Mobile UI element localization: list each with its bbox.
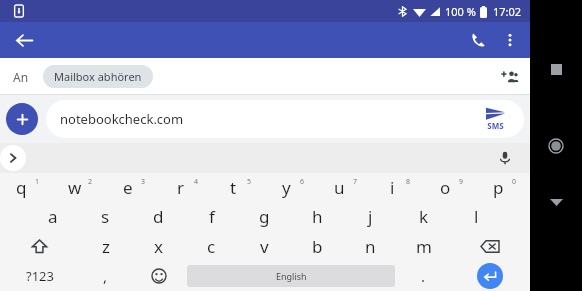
button[interactable]: , bbox=[79, 261, 132, 291]
staticText: g bbox=[259, 205, 270, 228]
button[interactable]: n bbox=[344, 231, 397, 261]
staticText: 7 bbox=[353, 177, 358, 187]
button[interactable]: Expand toolbar bbox=[0, 145, 26, 171]
staticText: 1 bbox=[35, 177, 40, 187]
staticText: y bbox=[282, 176, 291, 199]
button[interactable]: Enter bbox=[450, 261, 530, 291]
button[interactable]: Recent apps bbox=[539, 52, 573, 86]
staticText: t bbox=[230, 176, 237, 199]
button[interactable]: z bbox=[79, 231, 132, 261]
staticText: q bbox=[16, 176, 27, 199]
staticText: k bbox=[419, 205, 429, 228]
staticText: 9 bbox=[459, 177, 464, 187]
button[interactable]: p bbox=[477, 173, 530, 202]
button[interactable]: s bbox=[79, 202, 132, 231]
staticText: 17:02 bbox=[493, 4, 522, 19]
button[interactable]: Add recipient bbox=[492, 60, 526, 94]
button[interactable]: Hide keyboard bbox=[539, 185, 573, 219]
staticText: 6 bbox=[300, 177, 305, 187]
button[interactable]: u bbox=[318, 173, 371, 202]
staticText: n bbox=[365, 235, 376, 258]
button[interactable]: Voice input bbox=[492, 145, 518, 171]
staticText: Mailbox abhören bbox=[54, 69, 142, 84]
button[interactable]: Mailbox abhören bbox=[43, 65, 153, 88]
staticText: m bbox=[416, 235, 432, 258]
button[interactable]: r bbox=[159, 173, 212, 202]
button[interactable]: v bbox=[238, 231, 291, 261]
staticText: An bbox=[13, 69, 29, 85]
button[interactable]: m bbox=[397, 231, 450, 261]
button[interactable]: notebookcheck.com bbox=[46, 100, 524, 138]
staticText: f bbox=[209, 205, 215, 228]
staticText: s bbox=[101, 205, 110, 228]
staticText: SMS bbox=[487, 120, 504, 131]
staticText: e bbox=[123, 176, 133, 199]
staticText: English bbox=[276, 270, 307, 282]
button[interactable]: f bbox=[185, 202, 238, 231]
button[interactable]: x bbox=[132, 231, 185, 261]
button[interactable]: t bbox=[212, 173, 265, 202]
button[interactable]: k bbox=[397, 202, 450, 231]
button[interactable]: i bbox=[371, 173, 424, 202]
staticText: 4 bbox=[194, 177, 199, 187]
button[interactable]: o bbox=[424, 173, 477, 202]
staticText: 2 bbox=[88, 177, 93, 187]
button[interactable]: g bbox=[238, 202, 291, 231]
button[interactable]: . bbox=[397, 261, 450, 291]
staticText: v bbox=[260, 235, 269, 258]
staticText: 8 bbox=[406, 177, 411, 187]
staticText: u bbox=[334, 176, 345, 199]
staticText: 100 % bbox=[445, 4, 476, 19]
button[interactable]: English bbox=[187, 265, 395, 287]
button[interactable]: Send SMS bbox=[472, 107, 518, 131]
staticText: , bbox=[103, 266, 108, 286]
button[interactable]: w bbox=[53, 173, 106, 202]
staticText: notebookcheck.com bbox=[60, 110, 184, 128]
button[interactable]: Home bbox=[539, 129, 573, 163]
staticText: . bbox=[421, 266, 426, 286]
staticText: d bbox=[153, 205, 164, 228]
button[interactable]: Back bbox=[8, 24, 40, 56]
staticText: z bbox=[102, 235, 110, 258]
staticText: o bbox=[440, 176, 451, 199]
button[interactable]: y bbox=[265, 173, 318, 202]
staticText: p bbox=[493, 176, 504, 199]
button[interactable]: b bbox=[291, 231, 344, 261]
button[interactable]: c bbox=[185, 231, 238, 261]
staticText: b bbox=[312, 235, 323, 258]
button[interactable]: More options bbox=[494, 24, 526, 56]
button[interactable]: q bbox=[0, 173, 53, 202]
staticText: r bbox=[177, 176, 185, 199]
staticText: c bbox=[207, 235, 216, 258]
staticText: 5 bbox=[247, 177, 252, 187]
button[interactable]: Shift bbox=[0, 231, 79, 261]
button[interactable]: Call bbox=[462, 24, 494, 56]
button[interactable]: l bbox=[450, 202, 503, 231]
button[interactable]: h bbox=[291, 202, 344, 231]
staticText: 0 bbox=[512, 177, 517, 187]
staticText: h bbox=[312, 205, 323, 228]
button[interactable]: ?123 bbox=[0, 261, 79, 291]
button[interactable]: Attach bbox=[6, 103, 38, 135]
staticText: ?123 bbox=[26, 267, 54, 285]
button[interactable]: j bbox=[344, 202, 397, 231]
staticText: i bbox=[390, 176, 395, 199]
button[interactable]: e bbox=[106, 173, 159, 202]
button[interactable]: Backspace bbox=[450, 231, 530, 261]
button[interactable]: a bbox=[26, 202, 79, 231]
staticText: a bbox=[48, 205, 58, 228]
staticText: x bbox=[154, 235, 163, 258]
staticText: 3 bbox=[141, 177, 146, 187]
button[interactable]: d bbox=[132, 202, 185, 231]
staticText: w bbox=[68, 176, 82, 199]
staticText: j bbox=[368, 205, 373, 228]
staticText: l bbox=[474, 205, 479, 228]
button[interactable]: Emoji bbox=[132, 261, 185, 291]
